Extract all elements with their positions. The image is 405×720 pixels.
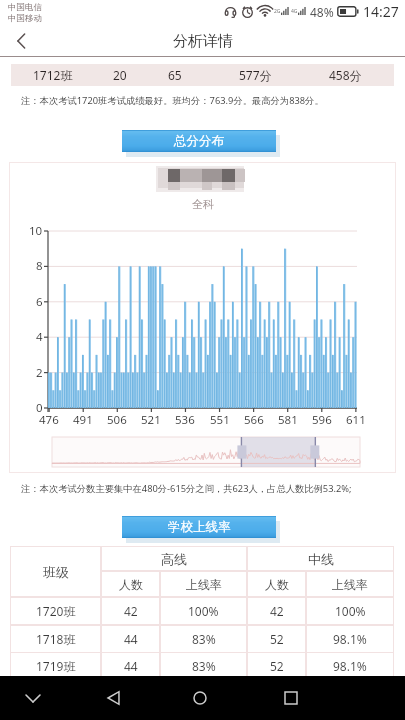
staticText: 52 <box>270 658 284 674</box>
staticText: 人数 <box>119 577 143 592</box>
staticText: 506 <box>107 412 127 428</box>
staticText: 6 <box>36 294 43 310</box>
staticText: 中国电信 <box>8 2 42 13</box>
staticText: 全科 <box>192 197 214 211</box>
staticText: 10 <box>29 223 43 239</box>
staticText: 总分分布 <box>174 133 224 149</box>
staticText: 98.1% <box>333 658 367 674</box>
button[interactable]: 1720班 <box>10 597 394 625</box>
staticText: 注：本次考试分数主要集中在480分-615分之间，共623人，占总人数比例53.… <box>21 482 352 495</box>
staticText: 1718班 <box>36 631 76 647</box>
staticText: 52 <box>270 631 284 647</box>
staticText: 0 <box>36 400 43 416</box>
staticText: 8 <box>36 258 43 274</box>
staticText: 98.1% <box>333 631 367 647</box>
button[interactable]: Home <box>180 676 220 720</box>
staticText: 中国移动 <box>8 13 42 24</box>
staticText: 班级 <box>43 564 69 580</box>
button[interactable]: Hide navigation bar <box>13 676 53 720</box>
staticText: 学校上线率 <box>168 519 231 535</box>
staticText: 48% <box>310 4 334 20</box>
staticText: 1712班 <box>33 67 73 83</box>
button[interactable]: 总分分布 <box>122 130 276 152</box>
staticText: 2G <box>274 8 281 15</box>
button[interactable]: 1712班 <box>11 64 394 86</box>
staticText: 100% <box>335 603 366 619</box>
staticText: 100% <box>188 603 219 619</box>
staticText: 83% <box>192 658 216 674</box>
staticText: 44 <box>124 658 138 674</box>
staticText: 人数 <box>265 577 289 592</box>
button[interactable]: Back <box>93 676 133 720</box>
staticText: 566 <box>244 412 264 428</box>
staticText: 4 <box>36 329 43 345</box>
staticText: 476 <box>39 412 59 428</box>
button[interactable]: 学校上线率 <box>122 516 276 538</box>
staticText: 581 <box>278 412 298 428</box>
staticText: 1720班 <box>36 603 76 619</box>
staticText: 42 <box>270 603 284 619</box>
staticText: 上线率 <box>186 577 222 592</box>
staticText: 分析详情 <box>173 32 233 51</box>
staticText: 注：本次考试1720班考试成绩最好。班均分：763.9分。最高分为838分。 <box>21 94 324 107</box>
staticText: 20 <box>113 67 127 83</box>
staticText: 458分 <box>329 67 362 83</box>
staticText: 491 <box>73 412 93 428</box>
staticText: 1719班 <box>36 658 76 674</box>
staticText: 上线率 <box>332 577 368 592</box>
staticText: 83% <box>192 631 216 647</box>
staticText: 611 <box>346 412 366 428</box>
staticText: 44 <box>124 631 138 647</box>
staticText: 521 <box>141 412 161 428</box>
button[interactable]: Recent apps <box>271 676 311 720</box>
staticText: 596 <box>312 412 332 428</box>
staticText: 2 <box>36 365 43 381</box>
staticText: 536 <box>175 412 195 428</box>
staticText: 中线 <box>308 551 334 567</box>
staticText: 577分 <box>239 67 272 83</box>
staticText: 高线 <box>161 551 187 567</box>
staticText: 14:27 <box>363 2 399 21</box>
button[interactable]: 1719班 <box>10 652 394 680</box>
staticText: 4G <box>291 8 298 15</box>
staticText: 65 <box>168 67 182 83</box>
staticText: 551 <box>210 412 230 428</box>
button[interactable]: Back <box>0 25 42 57</box>
button[interactable]: 1718班 <box>10 625 394 653</box>
staticText: 42 <box>124 603 138 619</box>
